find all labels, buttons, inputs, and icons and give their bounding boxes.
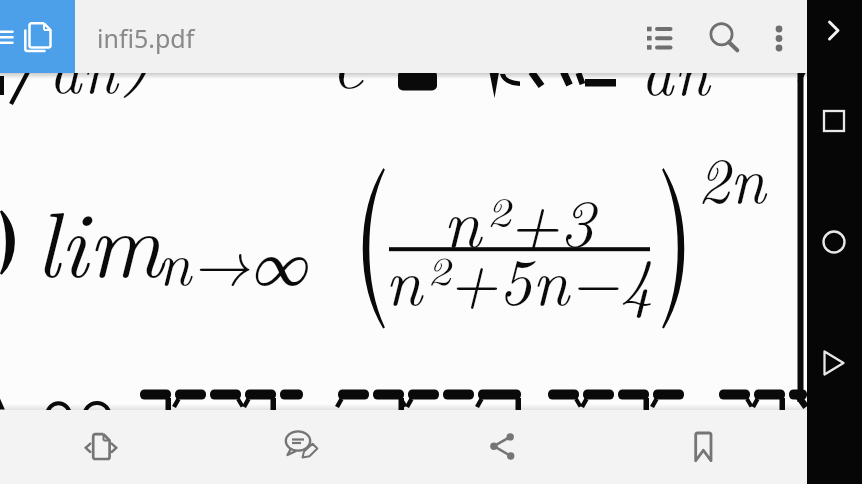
button[interactable]: [79, 425, 123, 469]
staticText: e: [331, 9, 364, 108]
staticText: n²+5n−4: [385, 231, 654, 324]
button[interactable]: [700, 16, 744, 60]
button[interactable]: [638, 16, 682, 60]
button[interactable]: [757, 16, 801, 60]
staticText: n²+3: [443, 170, 595, 266]
button[interactable]: [812, 220, 856, 264]
button[interactable]: [812, 99, 856, 143]
staticText: 2n: [697, 131, 766, 222]
button[interactable]: [812, 341, 856, 385]
staticText: n→∞: [157, 216, 307, 302]
staticText: an: [49, 21, 118, 112]
button[interactable]: [0, 0, 75, 73]
button[interactable]: [681, 425, 725, 469]
button[interactable]: [812, 8, 856, 52]
button[interactable]: [279, 425, 323, 469]
staticText: an: [641, 23, 710, 114]
button[interactable]: [480, 425, 524, 469]
staticText: lim: [36, 173, 164, 303]
staticText: infi5.pdf: [97, 21, 195, 55]
staticText: ): [122, 0, 158, 102]
